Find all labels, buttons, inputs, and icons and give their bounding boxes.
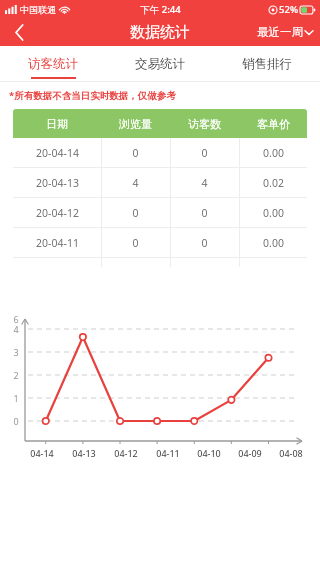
staticText: 下午 2:44 <box>140 3 181 16</box>
staticText: 04-10 <box>197 447 221 459</box>
staticText: 日期 <box>46 117 68 131</box>
staticText: 浏览量 <box>119 117 152 131</box>
staticText: 20-04-11 <box>36 236 79 250</box>
staticText: 04-11 <box>156 447 180 459</box>
staticText: 04-14 <box>30 447 54 459</box>
staticText: 4 <box>11 323 21 335</box>
staticText: 0.02 <box>263 176 284 190</box>
staticText: 0.00 <box>263 206 284 220</box>
staticText: 数据统计 <box>130 23 190 42</box>
button[interactable]: 20-04-14 <box>13 138 307 168</box>
staticText: 3 <box>11 346 21 358</box>
staticText: 访客统计 <box>28 56 78 72</box>
staticText: *所有数据不含当日实时数据，仅做参考 <box>9 89 176 102</box>
staticText: 1 <box>11 392 21 404</box>
staticText: 2 <box>11 369 21 381</box>
button[interactable]: 销售排行 <box>213 46 320 82</box>
staticText: 0 <box>132 206 139 220</box>
button[interactable]: Back <box>0 18 38 46</box>
staticText: 20-04-12 <box>36 206 79 220</box>
staticText: 最近一周 <box>257 25 303 39</box>
staticText: 交易统计 <box>135 56 185 72</box>
staticText: 销售排行 <box>242 56 292 72</box>
staticText: 6 <box>11 313 21 325</box>
staticText: 04-08 <box>279 447 303 459</box>
button[interactable]: 最近一周 <box>257 18 320 46</box>
staticText: 4 <box>201 176 208 190</box>
staticText: 04-13 <box>72 447 96 459</box>
staticText: 中国联通 <box>20 4 56 15</box>
staticText: 52% <box>279 3 298 16</box>
staticText: 0 <box>11 415 21 427</box>
staticText: 0 <box>132 146 139 160</box>
button[interactable]: 20-04-12 <box>13 198 307 228</box>
staticText: 0 <box>201 206 208 220</box>
staticText: 0 <box>201 236 208 250</box>
staticText: 04-12 <box>114 447 138 459</box>
button[interactable]: 20-04-11 <box>13 228 307 258</box>
staticText: 20-04-14 <box>36 146 79 160</box>
button[interactable]: 20-04-13 <box>13 168 307 198</box>
staticText: 0.00 <box>263 146 284 160</box>
staticText: 04-09 <box>238 447 262 459</box>
staticText: 0 <box>201 146 208 160</box>
staticText: 0 <box>132 236 139 250</box>
staticText: 客单价 <box>257 117 290 131</box>
staticText: 访客数 <box>188 117 221 131</box>
staticText: 20-04-13 <box>36 176 79 190</box>
button[interactable]: 交易统计 <box>106 46 213 82</box>
button[interactable]: 访客统计 <box>0 46 106 82</box>
staticText: 0.00 <box>263 236 284 250</box>
staticText: 4 <box>132 176 139 190</box>
